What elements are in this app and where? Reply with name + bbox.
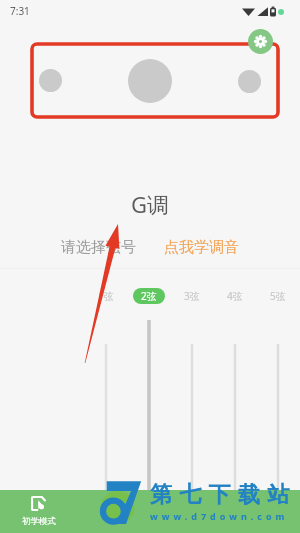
button[interactable]: 1弦 xyxy=(90,288,122,304)
button[interactable]: 初学模式 xyxy=(0,490,77,533)
button[interactable]: Previous xyxy=(39,69,62,92)
button[interactable]: 2弦 xyxy=(133,288,165,304)
staticText: 5弦 xyxy=(270,289,286,303)
staticText: 初学模式 xyxy=(22,516,56,527)
staticText: 1弦 xyxy=(98,289,114,303)
button[interactable]: 请选择弦号 xyxy=(61,238,136,257)
staticText: 4弦 xyxy=(227,289,243,303)
button[interactable]: Settings xyxy=(248,29,273,54)
button[interactable]: 点我学调音 xyxy=(164,238,239,257)
staticText: 7:31 xyxy=(10,4,30,18)
button[interactable]: 5弦 xyxy=(262,288,294,304)
button[interactable]: Next xyxy=(238,70,261,93)
button[interactable]: Play xyxy=(128,59,172,103)
button[interactable]: 3弦 xyxy=(176,288,208,304)
staticText: 2弦 xyxy=(141,289,157,303)
staticText: www.d7down.com xyxy=(150,510,289,522)
staticText: 第七下载站 xyxy=(150,481,297,509)
staticText: 3弦 xyxy=(184,289,200,303)
button[interactable]: 4弦 xyxy=(219,288,251,304)
staticText: G调 xyxy=(0,189,300,219)
